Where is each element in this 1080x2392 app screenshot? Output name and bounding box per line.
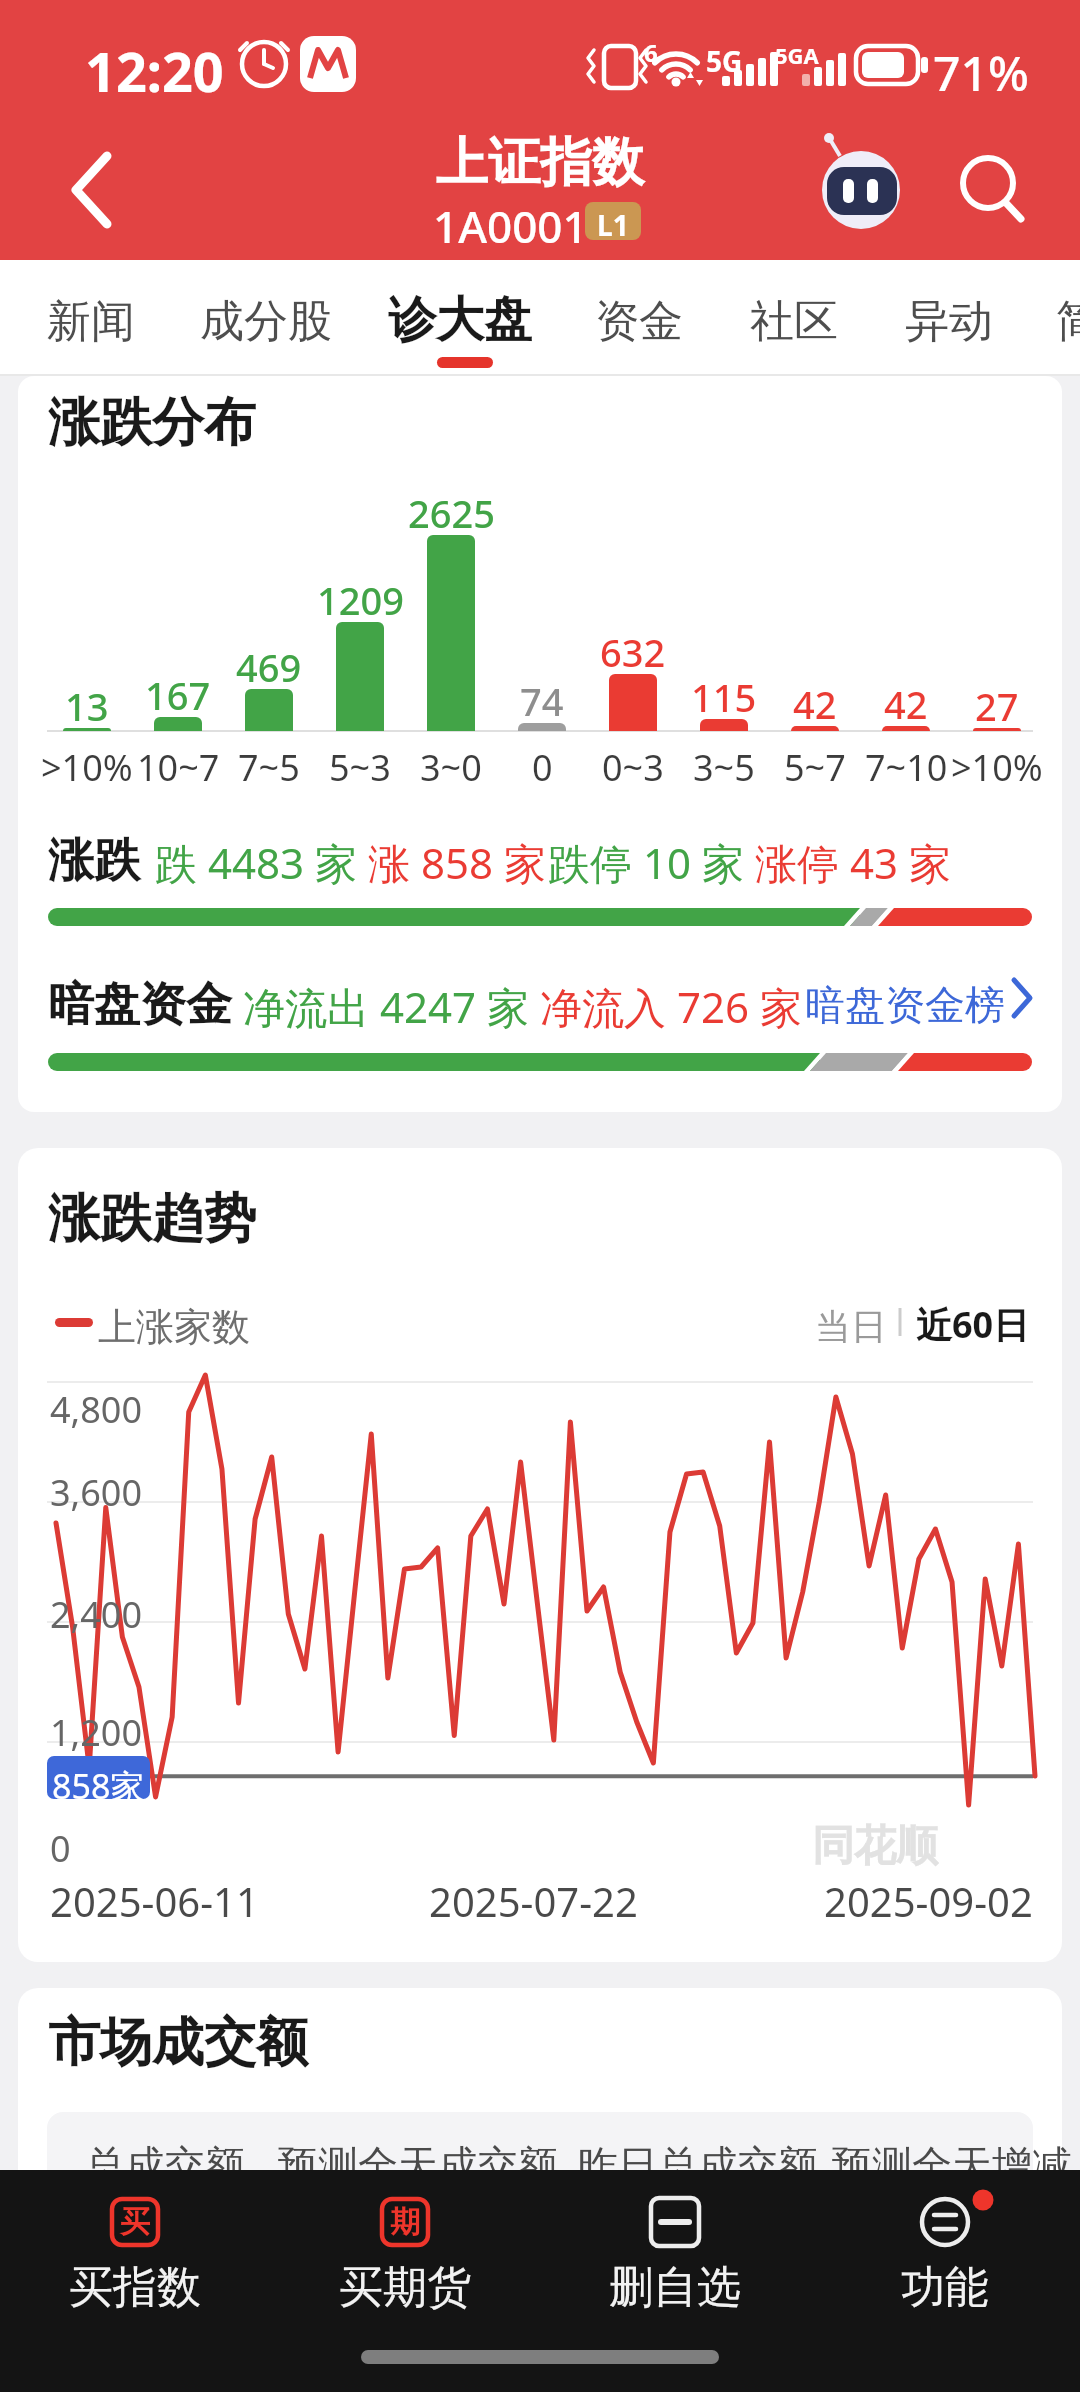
staticText: 昨日总成交额 [578, 2140, 818, 2190]
staticText: 期 [390, 2203, 420, 2241]
button[interactable] [375, 270, 560, 370]
staticText: 社区 [750, 294, 838, 349]
staticText: 2,400 [50, 1590, 143, 1639]
staticText: 27 [975, 680, 1019, 732]
button[interactable]: 期 [270, 2170, 540, 2340]
staticText: 买指数 [69, 2260, 201, 2315]
staticText: 市场成交额 [48, 2010, 308, 2076]
staticText: 3~0 [420, 743, 482, 792]
staticText: L1 [597, 206, 629, 244]
button[interactable] [950, 140, 1040, 235]
staticText: 0 [532, 743, 553, 792]
staticText: 5~7 [784, 743, 846, 792]
staticText: 诊大盘 [388, 290, 532, 350]
staticText: 469 [236, 641, 302, 693]
staticText: 2625 [408, 487, 495, 539]
staticText: 预测全天增减 [832, 2140, 1072, 2190]
button[interactable] [55, 140, 135, 240]
staticText: 4,800 [50, 1385, 143, 1434]
staticText: 暗盘资金 [48, 976, 232, 1034]
staticText: 上涨家数 [98, 1303, 250, 1351]
staticText: 1A0001 [433, 196, 588, 256]
staticText: 异动 [905, 294, 993, 349]
button[interactable]: 买 [0, 2170, 270, 2340]
staticText: 跌停 10 家 [548, 834, 744, 891]
staticText: 成分股 [200, 294, 332, 349]
button[interactable] [735, 270, 860, 370]
staticText: 总成交额 [85, 2140, 245, 2190]
staticText: 当日 [815, 1304, 887, 1349]
staticText: 7~10 [865, 743, 948, 792]
button[interactable] [815, 145, 910, 240]
staticText: 0~3 [602, 743, 664, 792]
staticText: 2025-07-22 [429, 1874, 638, 1928]
staticText: 净流入 726 家 [540, 978, 802, 1035]
staticText: 近60日 [916, 1300, 1030, 1349]
staticText: 5G [706, 42, 743, 80]
staticText: 74 [520, 675, 564, 727]
staticText: 71% [933, 40, 1029, 105]
staticText: 6 [644, 36, 658, 69]
staticText: 2025-09-02 [824, 1874, 1033, 1928]
staticText: 632 [600, 626, 666, 678]
staticText: 42 [793, 678, 837, 730]
staticText: 5GA [775, 40, 819, 70]
staticText: 7~5 [238, 743, 300, 792]
button[interactable] [800, 965, 1040, 1035]
staticText: 跌 4483 家 [155, 834, 357, 891]
staticText: 13 [65, 680, 109, 732]
staticText: 涨跌 [48, 832, 140, 890]
staticText: 10~7 [137, 743, 220, 792]
staticText: 167 [145, 669, 211, 721]
staticText: 暗盘资金榜 [805, 980, 1005, 1030]
staticText: 5~3 [329, 743, 391, 792]
staticText: 0 [50, 1824, 71, 1873]
button[interactable] [905, 1295, 1040, 1357]
staticText: 涨跌趋势 [48, 1186, 256, 1252]
staticText: 858家 [52, 1763, 145, 1809]
button[interactable] [30, 270, 150, 370]
button[interactable] [890, 270, 1015, 370]
staticText: 资金 [595, 294, 683, 349]
button[interactable] [580, 270, 705, 370]
button[interactable]: 删自选 [540, 2170, 810, 2340]
button[interactable]: 功能 [810, 2170, 1080, 2340]
staticText: 删自选 [609, 2260, 741, 2315]
staticText: 买期货 [339, 2260, 471, 2315]
staticText: 42 [884, 678, 928, 730]
button[interactable] [800, 1295, 895, 1357]
staticText: 2025-06-11 [50, 1874, 259, 1928]
staticText: 3~5 [693, 743, 755, 792]
staticText: 115 [691, 671, 757, 723]
staticText: 预测全天成交额 [278, 2140, 558, 2190]
staticText: 功能 [901, 2260, 989, 2315]
staticText: >10% [41, 743, 133, 792]
staticText: >10% [951, 743, 1043, 792]
staticText: 新闻 [47, 294, 135, 349]
staticText: 涨 858 家 [368, 834, 546, 891]
staticText: 12:20 [85, 34, 224, 108]
staticText: 涨跌分布 [48, 390, 256, 456]
staticText: 上证指数 [436, 130, 644, 196]
staticText: 同花顺 [812, 1820, 938, 1873]
staticText: 1209 [317, 574, 404, 626]
staticText: 涨停 43 家 [755, 834, 951, 891]
staticText: 净流出 4247 家 [243, 978, 529, 1035]
staticText: 买 [120, 2203, 150, 2241]
button[interactable] [185, 270, 350, 370]
staticText: 1,200 [50, 1708, 143, 1757]
staticText: 简况 [1056, 294, 1080, 349]
staticText: 3,600 [50, 1468, 143, 1517]
